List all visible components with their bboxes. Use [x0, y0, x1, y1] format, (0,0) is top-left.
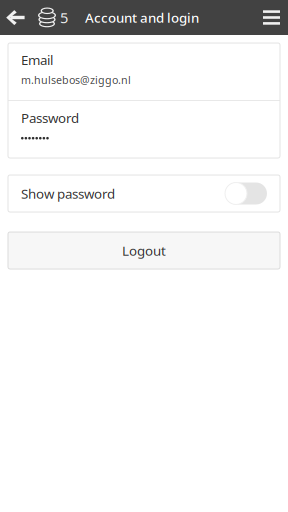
- button[interactable]: Password: [8, 101, 280, 158]
- staticText: Show password: [21, 185, 115, 202]
- staticText: Logout: [122, 242, 166, 259]
- staticText: 5: [60, 8, 68, 27]
- staticText: Account and login: [85, 9, 199, 26]
- staticText: Email: [21, 51, 53, 69]
- button[interactable]: Logout: [8, 232, 280, 269]
- button[interactable]: Email: [8, 43, 280, 100]
- staticText: m.hulsebos@ziggo.nl: [21, 73, 131, 87]
- button[interactable]: Back: [0, 0, 37, 35]
- button[interactable]: Show password: [8, 175, 280, 212]
- button[interactable]: Menu: [253, 0, 288, 35]
- staticText: Password: [21, 109, 79, 127]
- button[interactable]: Credits: 5: [37, 0, 68, 35]
